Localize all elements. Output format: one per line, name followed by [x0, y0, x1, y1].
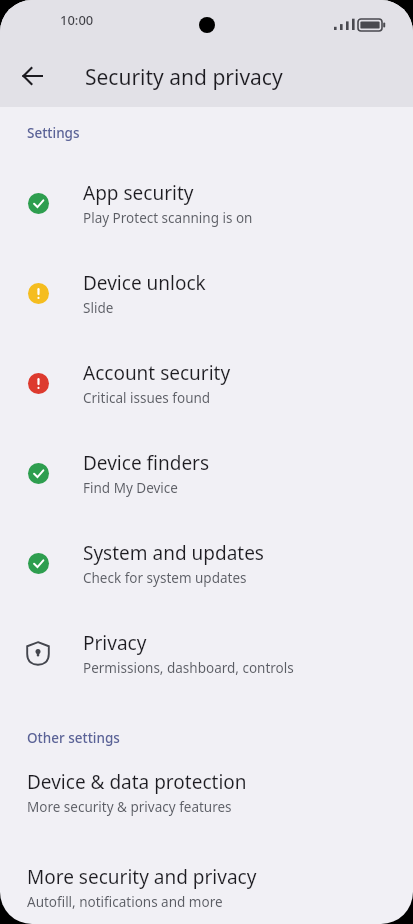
staticText: Slide	[83, 299, 114, 317]
staticText: Device unlock	[83, 270, 206, 296]
staticText: Permissions, dashboard, controls	[83, 659, 294, 677]
staticText: Other settings	[27, 729, 120, 747]
staticText: More security & privacy features	[27, 798, 232, 816]
staticText: Autofill, notifications and more	[27, 893, 223, 911]
staticText: 10:00	[60, 11, 94, 29]
button[interactable]: Back	[9, 52, 57, 100]
button[interactable]: Device unlock	[0, 248, 413, 338]
button[interactable]: Privacy	[0, 608, 413, 698]
staticText: More security and privacy	[27, 864, 257, 890]
staticText: Find My Device	[83, 479, 178, 497]
button[interactable]: System and updates	[0, 518, 413, 608]
staticText: Check for system updates	[83, 569, 247, 587]
staticText: Device & data protection	[27, 769, 247, 795]
staticText: System and updates	[83, 540, 264, 566]
button[interactable]: More security and privacy	[0, 862, 413, 913]
staticText: Account security	[83, 360, 231, 386]
button[interactable]: App security	[0, 158, 413, 248]
button[interactable]: Device & data protection	[0, 767, 413, 818]
button[interactable]: Device finders	[0, 428, 413, 518]
staticText: Settings	[27, 124, 80, 142]
staticText: Play Protect scanning is on	[83, 209, 253, 227]
button[interactable]: Account security	[0, 338, 413, 428]
staticText: Critical issues found	[83, 389, 211, 407]
staticText: Device finders	[83, 450, 210, 476]
staticText: App security	[83, 180, 194, 206]
staticText: Privacy	[83, 630, 147, 656]
staticText: Security and privacy	[85, 63, 283, 92]
